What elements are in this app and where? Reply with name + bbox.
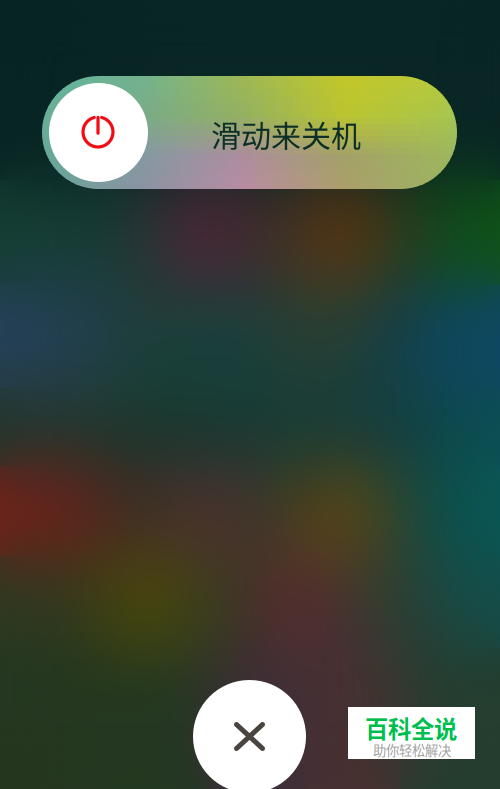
staticText: 滑动来关机 <box>211 112 361 155</box>
button[interactable]: 滑动来关机 <box>42 76 457 189</box>
button[interactable]: Cancel <box>193 680 306 789</box>
staticText: 助你轻松解决 <box>373 740 451 759</box>
staticText: 百科全说 <box>365 711 457 745</box>
